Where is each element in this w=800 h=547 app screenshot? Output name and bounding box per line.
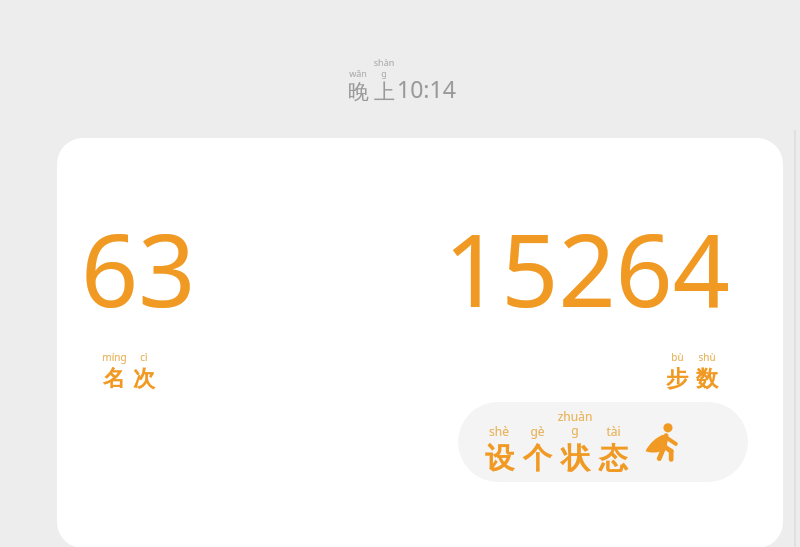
staticText: 个 (523, 440, 552, 477)
staticText: bù (671, 350, 684, 364)
staticText: 步 (666, 365, 688, 393)
staticText: 名 (103, 365, 125, 393)
staticText: 63 (81, 200, 196, 336)
staticText: 设 (485, 440, 514, 477)
staticText: zhuàng (556, 408, 594, 439)
staticText: 晚 (348, 79, 369, 105)
staticText: shù (698, 350, 716, 364)
staticText: 态 (599, 440, 628, 477)
staticText: tài (606, 423, 621, 439)
staticText: 15264 (444, 200, 730, 336)
staticText: 数 (696, 365, 718, 393)
staticText: 状 (561, 440, 590, 477)
staticText: 10:14 (397, 73, 456, 104)
staticText: 上 (374, 79, 395, 105)
staticText: cì (140, 350, 148, 364)
button[interactable]: shè (458, 402, 748, 482)
staticText: míng (102, 350, 127, 364)
other: 设个状态 (640, 420, 684, 464)
button[interactable]: 63 (57, 138, 783, 547)
staticText: shè (489, 423, 509, 439)
staticText: shàng (371, 56, 397, 79)
staticText: 次 (133, 365, 155, 393)
staticText: gè (530, 423, 545, 439)
staticText: wǎn (349, 67, 367, 79)
